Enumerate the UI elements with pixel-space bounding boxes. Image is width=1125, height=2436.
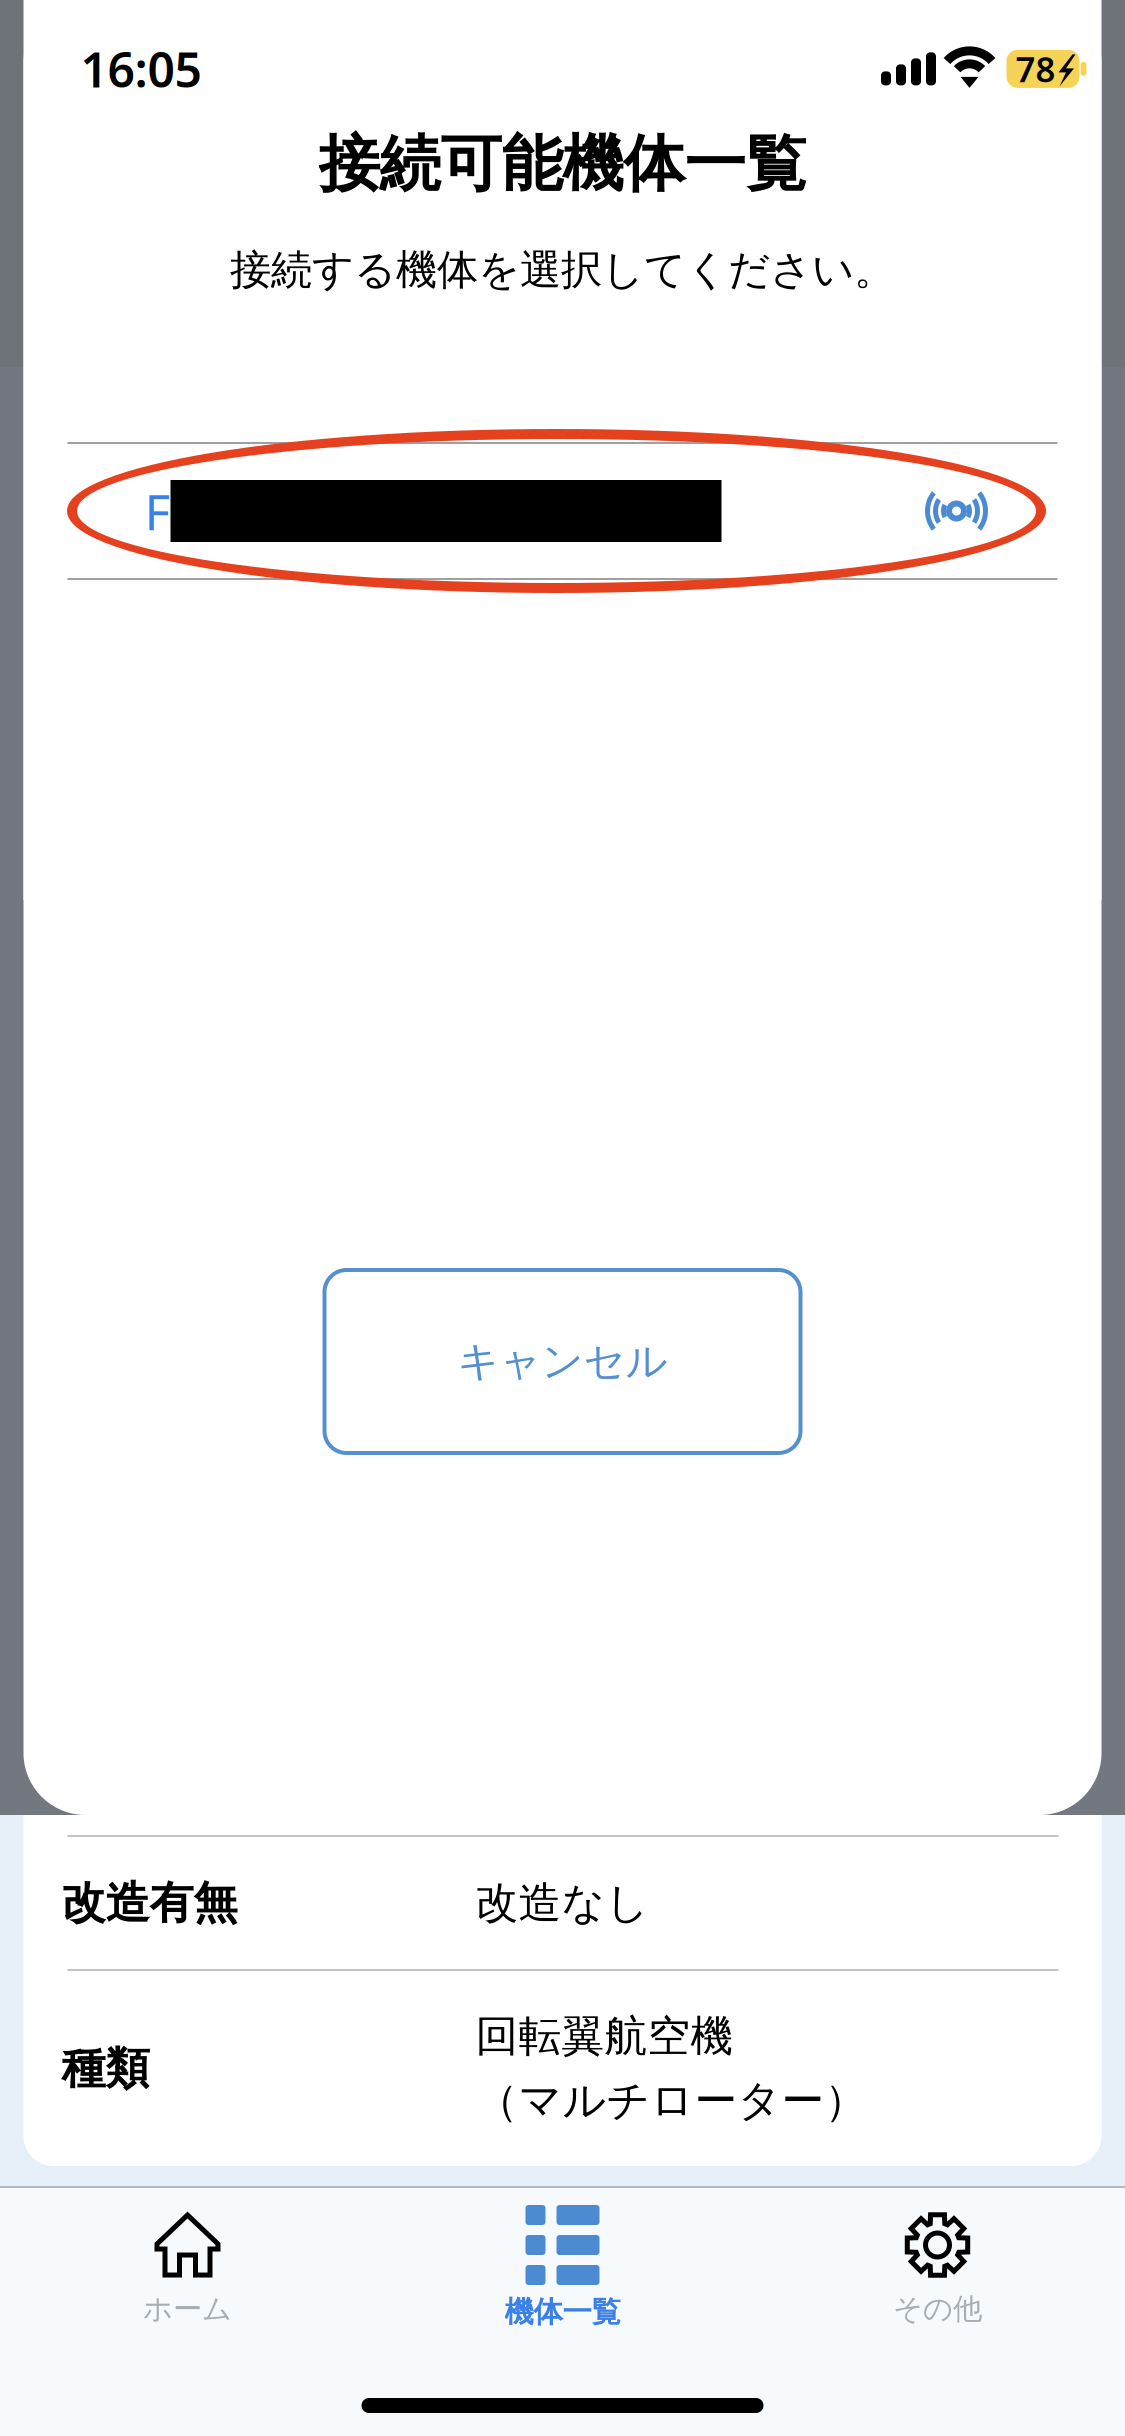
button[interactable]: キャンセル	[324, 1270, 800, 1453]
staticText: 回転翼航空機	[475, 2010, 733, 2062]
staticText: ホーム	[143, 2291, 232, 2327]
staticText: 16:05	[80, 37, 201, 101]
staticText: （マルチローター）	[475, 2074, 867, 2127]
staticText: 改造有無	[61, 1876, 237, 1930]
staticText: 接続する機体を選択してください。	[230, 245, 895, 295]
staticText: その他	[893, 2291, 982, 2327]
button[interactable]: その他	[750, 2191, 1125, 2337]
button[interactable]: ホーム	[0, 2191, 375, 2337]
staticText: 接続可能機体一覧	[318, 126, 806, 202]
staticText: 種類	[61, 2041, 149, 2095]
staticText: 改造なし	[475, 1877, 649, 1929]
staticText: F	[144, 478, 170, 544]
button[interactable]: 機体一覧	[375, 2188, 750, 2340]
staticText: 機体一覧	[504, 2294, 620, 2330]
staticText: 78	[1015, 46, 1055, 92]
staticText: キャンセル	[457, 1336, 667, 1387]
button[interactable]: F	[23, 444, 1101, 578]
